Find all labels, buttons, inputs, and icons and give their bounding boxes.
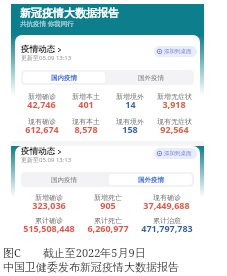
staticText: 国外疫情 [138,74,164,82]
staticText: 添加到桌面 [164,150,192,157]
button[interactable]: 国内疫情 [23,72,105,83]
staticText: 515,508,448 [23,222,75,233]
staticText: 现有本土 [72,117,100,126]
staticText: 新增无症状 [157,92,192,101]
staticText: 累计确诊 [35,216,63,225]
staticText: 14 [125,98,136,110]
staticText: 现有无症状 [157,117,192,126]
staticText: 新增本土 [72,92,100,101]
staticText: 158 [122,123,138,135]
staticText: 添加到桌面 [164,48,192,55]
staticText: 累计治愈 [153,216,181,225]
staticText: 国外疫情 [138,176,164,184]
staticText: 新冠疫情大数据报告 [20,6,119,20]
staticText: 现有境外 [116,117,144,126]
staticText: 42,746 [27,98,56,110]
staticText: 6,260,977 [87,222,129,233]
staticText: 905 [100,199,116,211]
staticText: 共抗疫情 你我同行 [20,19,74,28]
staticText: 471,797,783 [141,222,193,233]
staticText: 疫情动态 [21,146,55,157]
staticText: 323,036 [32,199,66,211]
button[interactable]: 国外疫情 [109,174,192,185]
button[interactable]: 国外疫情 [109,72,192,83]
button[interactable]: 国内疫情 [23,174,105,185]
staticText: 疫情动态 [21,44,55,55]
staticText: 新增死亡 [94,193,122,202]
staticText: 新增确诊 [35,193,63,202]
staticText: 37,449,688 [143,199,190,211]
staticText: 新增境外 [116,92,144,101]
staticText: 新增确诊 [28,92,56,101]
staticText: 图C 截止至2022年5月9日 [3,245,146,260]
staticText: 国内疫情 [51,176,77,184]
staticText: 更新至05.09 13:13 [21,156,72,164]
staticText: 更新至05.09 13:13 [21,54,72,62]
staticText: 401 [78,98,94,110]
staticText: 中国卫健委发布新冠疫情大数据报告 [3,260,179,274]
staticText: 现有确诊 [153,193,181,202]
button[interactable]: 添加到桌面 [154,46,197,57]
staticText: 现有确诊 [28,117,56,126]
staticText: 8,578 [74,123,98,135]
staticText: 612,674 [25,123,59,135]
staticText: 92,564 [160,123,189,135]
staticText: 3,918 [162,98,186,110]
staticText: 累计死亡 [94,216,122,225]
button[interactable]: 疫情动态 [21,146,72,165]
button[interactable]: 添加到桌面 [154,148,197,159]
staticText: 国内疫情 [51,74,77,82]
button[interactable]: 疫情动态 [21,44,72,63]
